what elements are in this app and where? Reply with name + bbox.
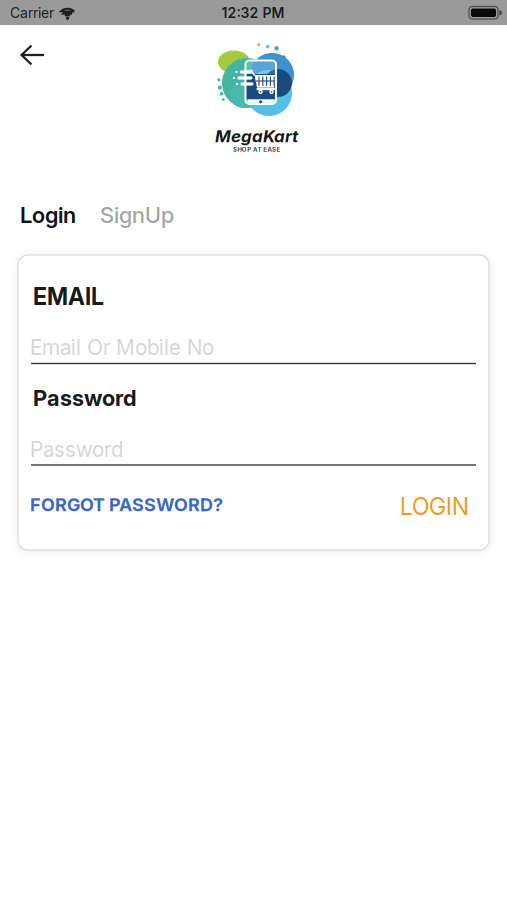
staticText: EMAIL bbox=[33, 283, 104, 310]
staticText: MegaKart bbox=[215, 126, 298, 146]
staticText: Email Or Mobile No bbox=[30, 335, 214, 360]
button[interactable]: FORGOT PASSWORD? bbox=[30, 494, 223, 515]
button[interactable]: LOGIN bbox=[400, 493, 469, 520]
staticText: FORGOT PASSWORD? bbox=[30, 494, 223, 515]
button[interactable] bbox=[0, 0, 60, 90]
button[interactable]: SignUp bbox=[100, 202, 174, 228]
staticText: Password bbox=[33, 385, 137, 411]
staticText: Login bbox=[20, 202, 76, 228]
staticText: SignUp bbox=[100, 202, 174, 228]
staticText: LOGIN bbox=[400, 493, 469, 520]
staticText: Carrier bbox=[10, 5, 54, 21]
staticText: SHOP AT EASE bbox=[233, 146, 280, 153]
button[interactable]: Login bbox=[20, 202, 76, 228]
staticText: Password bbox=[30, 437, 123, 462]
staticText: 12:32 PM bbox=[221, 5, 284, 21]
